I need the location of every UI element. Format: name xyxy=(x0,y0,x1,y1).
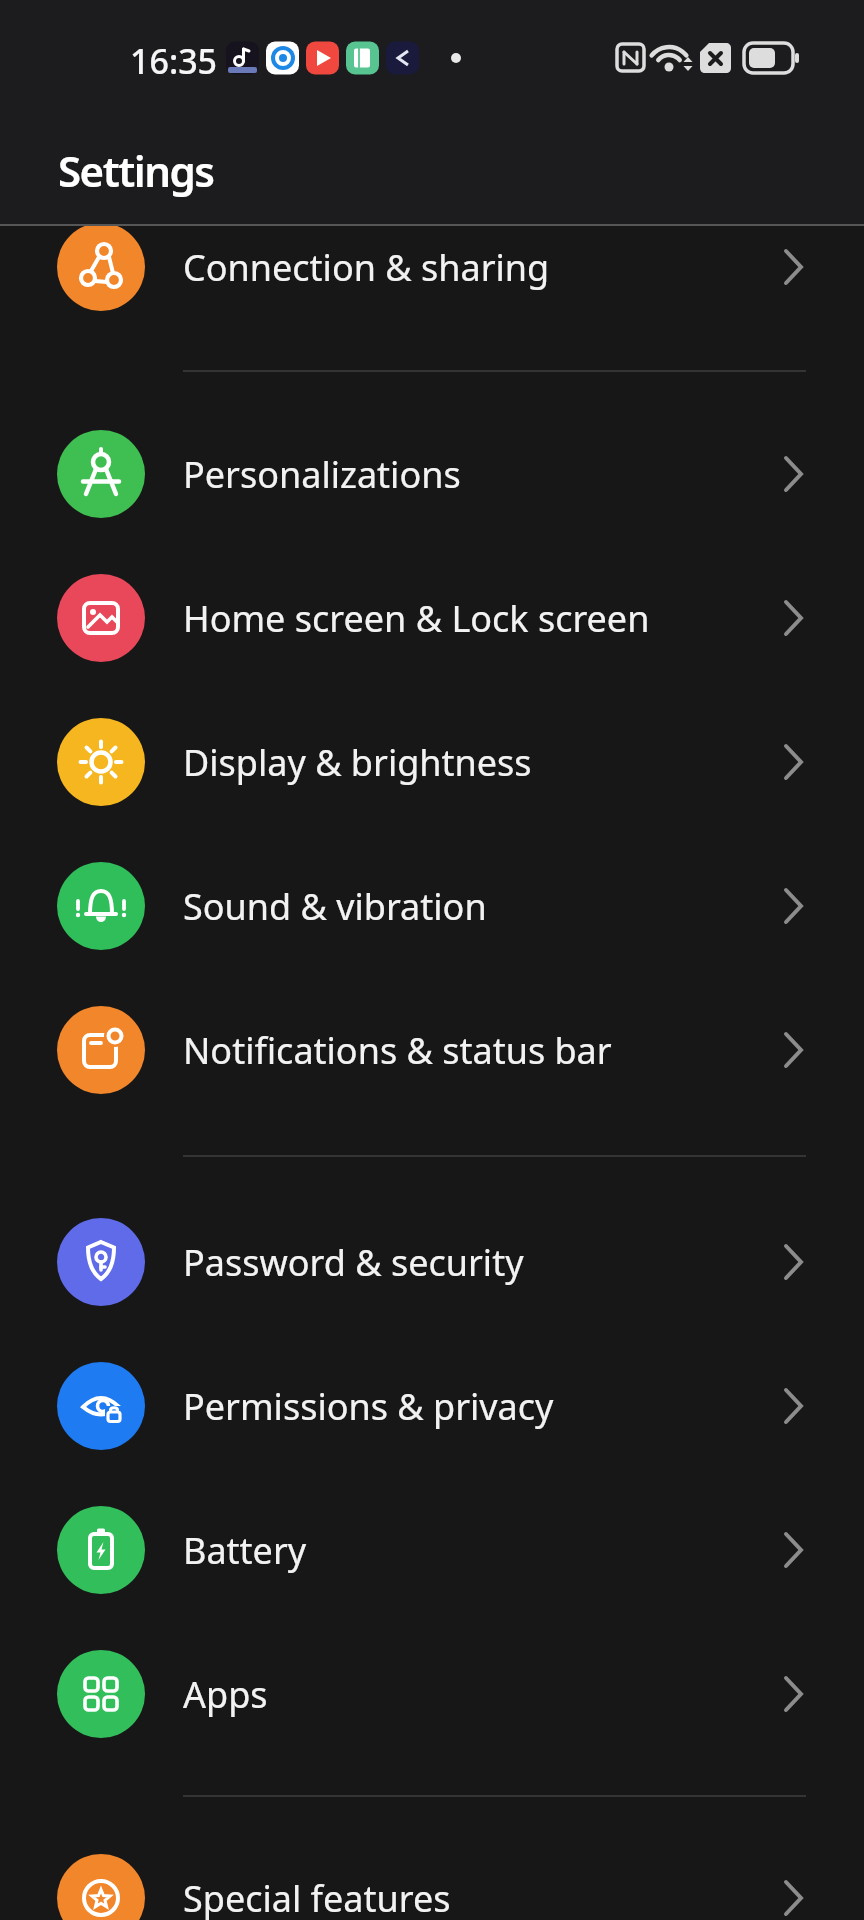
button[interactable]: Notifications & status bar xyxy=(0,978,864,1122)
staticText: Battery xyxy=(183,1526,307,1575)
staticText: Connection & sharing xyxy=(183,243,550,292)
staticText: Password & security xyxy=(183,1238,524,1287)
button[interactable]: Sound & vibration xyxy=(0,834,864,978)
button[interactable]: Battery xyxy=(0,1478,864,1622)
staticText: Home screen & Lock screen xyxy=(183,594,650,643)
button[interactable]: Home screen & Lock screen xyxy=(0,546,864,690)
button[interactable]: Permissions & privacy xyxy=(0,1334,864,1478)
staticText: Personalizations xyxy=(183,450,461,499)
button[interactable]: Password & security xyxy=(0,1190,864,1334)
staticText: Special features xyxy=(183,1874,451,1920)
button[interactable]: Special features xyxy=(0,1826,864,1920)
button[interactable]: Display & brightness xyxy=(0,690,864,834)
staticText: 16:35 xyxy=(130,38,218,84)
staticText: Settings xyxy=(58,142,214,199)
staticText: Display & brightness xyxy=(183,738,532,787)
button[interactable]: Personalizations xyxy=(0,402,864,546)
staticText: Permissions & privacy xyxy=(183,1382,554,1431)
staticText: Apps xyxy=(183,1670,268,1719)
staticText: Sound & vibration xyxy=(183,882,487,931)
button[interactable]: Apps xyxy=(0,1622,864,1766)
button[interactable]: Connection & sharing xyxy=(0,195,864,339)
staticText: Notifications & status bar xyxy=(183,1026,612,1075)
